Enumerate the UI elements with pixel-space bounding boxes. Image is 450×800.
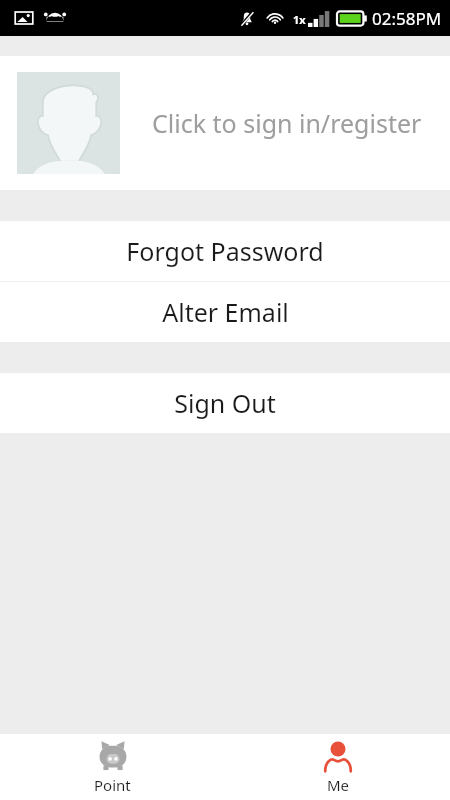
- staticText: 1x: [293, 12, 306, 27]
- button[interactable]: Point: [0, 734, 225, 800]
- button[interactable]: Me: [225, 734, 450, 800]
- staticText: Click to sign in/register: [152, 106, 422, 140]
- staticText: Me: [327, 775, 350, 795]
- button[interactable]: Alter Email: [0, 282, 450, 342]
- button[interactable]: Sign Out: [0, 373, 450, 433]
- staticText: Point: [94, 775, 131, 795]
- other: Point: [97, 740, 129, 772]
- staticText: Alter Email: [162, 295, 289, 329]
- staticText: Sign Out: [174, 386, 276, 420]
- staticText: 02:58PM: [372, 7, 442, 30]
- button[interactable]: Click to sign in/register: [0, 56, 450, 190]
- staticText: Forgot Password: [126, 234, 324, 268]
- button[interactable]: Forgot Password: [0, 221, 450, 281]
- other: Me: [322, 740, 354, 772]
